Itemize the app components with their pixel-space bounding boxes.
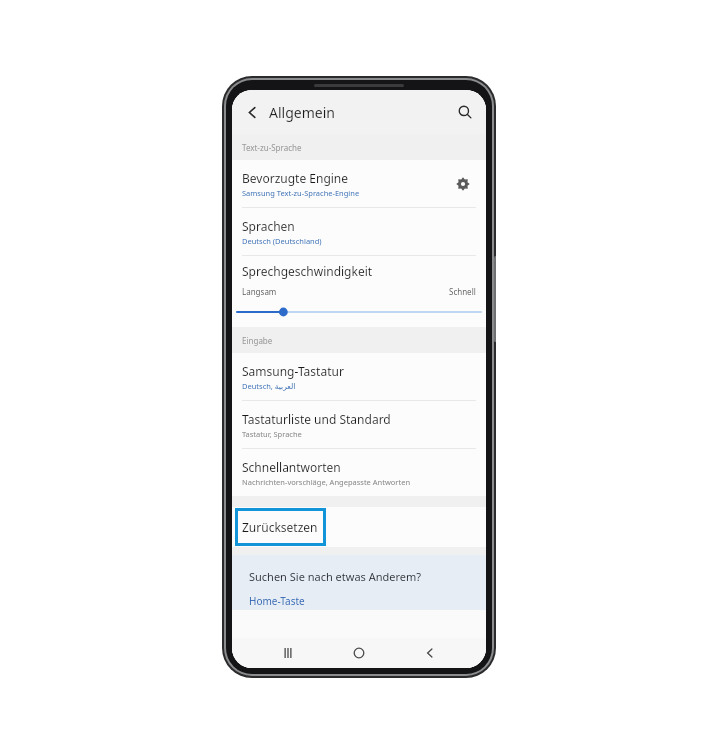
button[interactable]: Search: [453, 100, 477, 124]
staticText: Sprachen: [242, 218, 295, 234]
button[interactable]: Suchen Sie nach etwas Anderem?: [232, 555, 486, 610]
button[interactable]: Engine settings: [450, 171, 476, 197]
staticText: Sprechgeschwindigkeit: [242, 263, 373, 279]
button[interactable]: Recents: [273, 638, 303, 668]
button[interactable]: Sprachen: [232, 208, 486, 255]
button[interactable]: Schnellantworten: [232, 449, 486, 496]
button[interactable]: Back: [241, 101, 263, 123]
staticText: Tastaturliste und Standard: [242, 411, 391, 427]
button[interactable]: Zurücksetzen: [232, 507, 486, 547]
staticText: Samsung-Tastatur: [242, 363, 344, 379]
staticText: Samsung Text-zu-Sprache-Engine: [242, 188, 360, 198]
staticText: Suchen Sie nach etwas Anderem?: [249, 569, 422, 584]
staticText: Tastatur, Sprache: [242, 429, 302, 439]
button[interactable]: Sprechgeschwindigkeit: [232, 256, 486, 327]
button[interactable]: Bevorzugte Engine: [232, 160, 486, 207]
staticText: Schnellantworten: [242, 459, 341, 475]
staticText: Zurücksetzen: [242, 519, 318, 535]
button[interactable]: Tastaturliste und Standard: [232, 401, 486, 448]
staticText: Bevorzugte Engine: [242, 170, 349, 186]
button[interactable]: Back: [415, 638, 445, 668]
staticText: Deutsch, العربية: [242, 381, 296, 391]
staticText: Nachrichten-vorschläge, Angepasste Antwo…: [242, 477, 411, 487]
staticText: Langsam: [242, 286, 277, 297]
button[interactable]: Samsung-Tastatur: [232, 353, 486, 400]
staticText: Allgemein: [269, 103, 335, 122]
staticText: Schnell: [449, 286, 476, 297]
staticText: Home-Taste: [249, 594, 305, 608]
button[interactable]: Home: [344, 638, 374, 668]
staticText: Text-zu-Sprache: [242, 142, 302, 153]
staticText: Eingabe: [242, 335, 273, 346]
staticText: Deutsch (Deutschland): [242, 236, 322, 246]
